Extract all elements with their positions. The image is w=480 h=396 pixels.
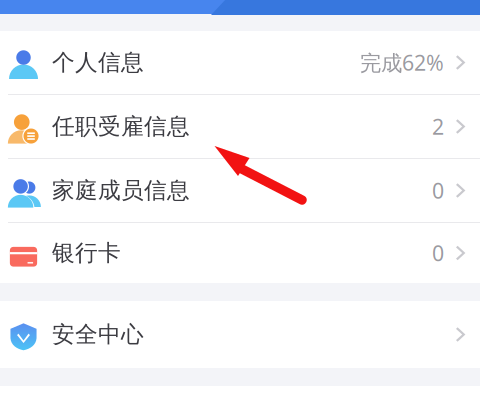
button[interactable]: 个人信息	[0, 31, 480, 94]
button[interactable]: 家庭成员信息	[0, 159, 480, 222]
staticText: 个人信息	[52, 49, 144, 76]
staticText: 家庭成员信息	[52, 177, 190, 204]
staticText: 银行卡	[52, 239, 121, 267]
staticText: 任职受雇信息	[52, 113, 190, 140]
button[interactable]: 任职受雇信息	[0, 95, 480, 158]
staticText: 2	[432, 112, 444, 141]
staticText: 0	[432, 176, 444, 205]
staticText: 完成62%	[360, 48, 444, 77]
staticText: 安全中心	[52, 321, 144, 348]
button[interactable]: 银行卡	[0, 223, 480, 283]
button[interactable]: 安全中心	[0, 301, 480, 368]
staticText: 0	[432, 239, 444, 267]
